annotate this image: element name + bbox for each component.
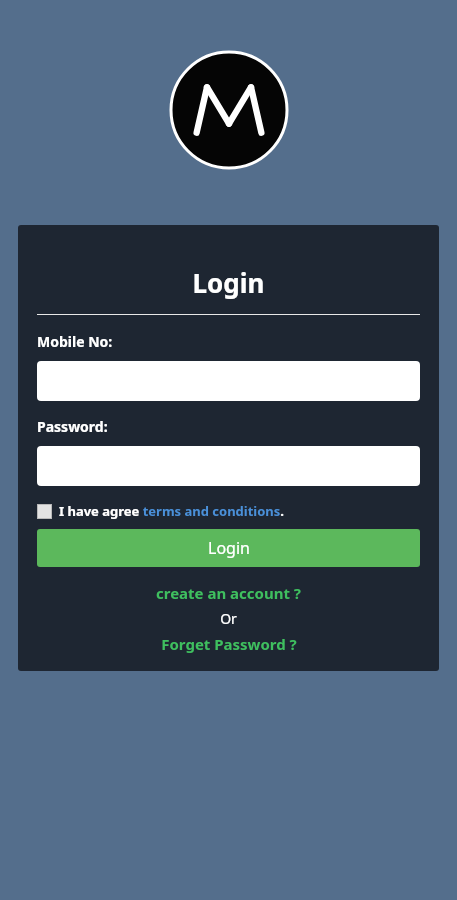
button[interactable]: create an account ? [37, 583, 420, 603]
button[interactable]: Forget Password ? [37, 634, 420, 654]
staticText: Forget Password ? [161, 634, 297, 654]
staticText: Login [37, 265, 420, 300]
button[interactable] [37, 446, 420, 486]
staticText: Login [208, 537, 250, 559]
staticText: create an account ? [156, 583, 301, 603]
staticText: Mobile No: [37, 332, 113, 351]
staticText: Password: [37, 417, 108, 436]
button[interactable]: Login [37, 529, 420, 567]
button[interactable] [37, 361, 420, 401]
other: App logo [169, 50, 289, 170]
staticText: Or [37, 609, 420, 628]
button[interactable]: I have agree terms and conditions. [37, 502, 284, 520]
staticText: I have agree terms and conditions. [59, 502, 284, 520]
